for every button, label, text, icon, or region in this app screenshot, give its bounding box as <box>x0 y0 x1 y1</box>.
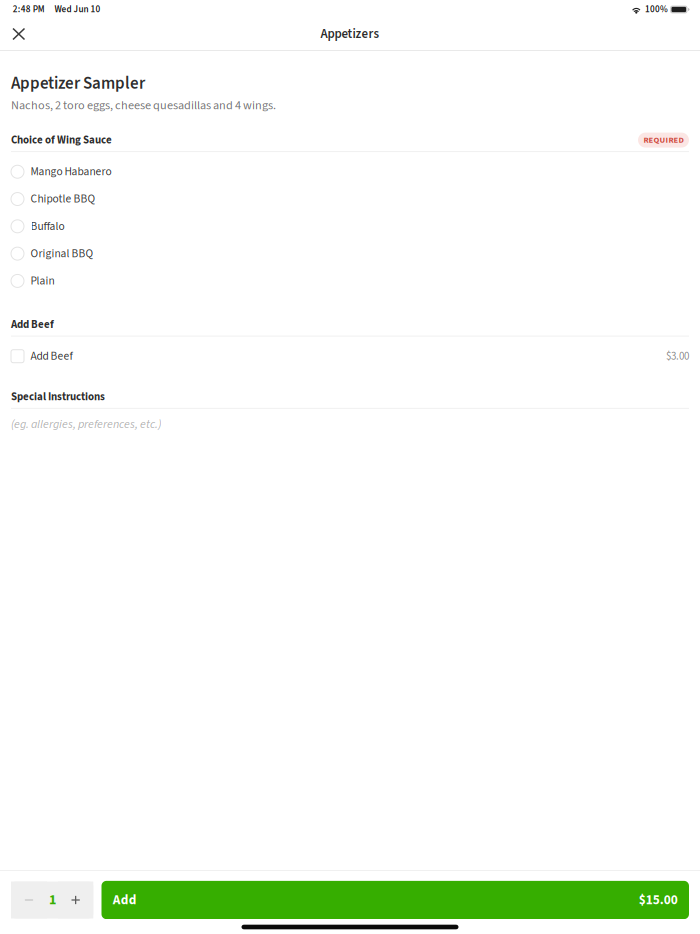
staticText: Appetizers <box>320 25 379 43</box>
staticText: Original BBQ <box>30 245 93 262</box>
button[interactable]: Increase quantity <box>58 881 93 918</box>
staticText: 100% <box>645 3 668 16</box>
staticText: 2:48 PM <box>13 3 45 16</box>
button[interactable]: Original BBQ <box>0 240 700 267</box>
staticText: Choice of Wing Sauce <box>11 132 112 148</box>
staticText: Plain <box>30 273 54 289</box>
button[interactable]: Mango Habanero <box>0 158 700 185</box>
staticText: Appetizer Sampler <box>11 71 145 96</box>
staticText: Chipotle BBQ <box>30 191 95 207</box>
button[interactable]: Add Beef <box>0 343 700 370</box>
button[interactable]: Plain <box>0 267 700 295</box>
staticText: REQUIRED <box>643 134 683 146</box>
staticText: Special Instructions <box>11 389 105 405</box>
staticText: Buffalo <box>30 218 64 234</box>
staticText: Wed Jun 10 <box>55 3 101 16</box>
staticText: Add Beef <box>11 317 54 332</box>
staticText: $3.00 <box>666 348 689 364</box>
staticText: 1 <box>49 890 56 910</box>
staticText: Nachos, 2 toro eggs, cheese quesadillas … <box>11 97 276 114</box>
button[interactable]: Add <box>101 881 689 919</box>
button[interactable]: Buffalo <box>0 213 700 240</box>
staticText: Add Beef <box>30 348 72 364</box>
button[interactable]: Chipotle BBQ <box>0 185 700 213</box>
staticText: (eg. allergies, preferences, etc.) <box>11 416 162 433</box>
button[interactable]: Close <box>0 19 38 48</box>
staticText: Add <box>113 890 137 909</box>
staticText: Mango Habanero <box>30 164 111 180</box>
staticText: $15.00 <box>639 890 678 909</box>
